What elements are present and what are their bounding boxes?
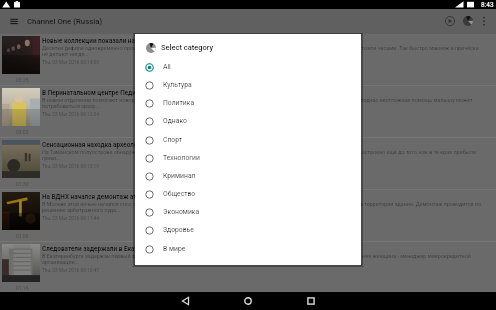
staticText: Следователи задержали в Екатеринбурге [42, 245, 169, 253]
staticText: Thu, 03 Mar 2016 06:10:47 [42, 268, 99, 274]
staticText: Select category [161, 43, 214, 52]
staticText: Thu, 03 Mar 2016 06:12:34 [42, 112, 99, 118]
staticText: 01:06 [16, 233, 29, 239]
button[interactable]: Statistics [463, 16, 473, 26]
staticText: Спорт [163, 136, 183, 144]
button[interactable]: Play [438, 9, 462, 33]
button[interactable]: 01:30 [0, 138, 496, 189]
staticText: На ВДНХ начался демонтаж аттракционов [42, 193, 173, 201]
staticText: All [163, 63, 171, 71]
staticText: В Перинатальном центре Педиатрического у… [42, 89, 216, 97]
button[interactable]: Home [238, 292, 258, 310]
button[interactable]: Back [176, 292, 196, 310]
button[interactable]: Спорт [135, 131, 361, 149]
button[interactable]: 03:25 [0, 34, 496, 85]
staticText: 8:43 [481, 1, 494, 9]
button[interactable]: Здоровье [135, 221, 361, 239]
button[interactable]: 03:05 [0, 86, 496, 137]
staticText: 01:16 [16, 285, 29, 291]
button[interactable]: Политика [135, 94, 361, 112]
staticText: Новые коллекции показали на Неделе моды [42, 37, 179, 45]
button[interactable]: 01:16 [0, 242, 496, 293]
button[interactable]: Однако [135, 112, 361, 130]
button[interactable]: All [135, 58, 361, 76]
staticText: Здоровье [163, 226, 194, 234]
staticText: 03:25 [16, 77, 29, 83]
staticText: Channel One (Russia) [27, 17, 103, 26]
button[interactable]: Криминал [135, 167, 361, 185]
staticText: Экономика [163, 208, 200, 216]
staticText: Thu, 03 Mar 2016 06:12:19 [42, 164, 99, 170]
staticText: Thu, 03 Mar 2016 06:11:44 [42, 216, 99, 222]
staticText: Политика [163, 99, 195, 107]
staticText: В Екатеринбурге задержан первый фигурант… [42, 253, 485, 265]
button[interactable]: Open navigation drawer [2, 11, 26, 35]
staticText: Однако [163, 117, 187, 125]
button[interactable]: Технологии [135, 149, 361, 167]
staticText: Общество [163, 190, 196, 198]
staticText: Thu, 03 Mar 2016 06:14:00 [42, 60, 99, 66]
staticText: В новом отделении помогают новорождённым… [42, 97, 485, 109]
button[interactable]: Культура [135, 76, 361, 94]
staticText: Десятки дефиле одновременно проходят сей… [42, 45, 485, 57]
button[interactable]: Общество [135, 185, 361, 203]
staticText: 01:30 [16, 181, 29, 187]
staticText: В Москве этой ночью начался снос незакон… [42, 201, 485, 213]
staticText: В мире [163, 245, 186, 253]
button[interactable]: Recent apps [301, 292, 321, 310]
staticText: Криминал [163, 172, 196, 180]
button[interactable]: В мире [135, 240, 361, 258]
staticText: Технологии [163, 154, 200, 162]
button[interactable]: More options [474, 9, 494, 29]
button[interactable]: Экономика [135, 203, 361, 221]
staticText: На Таманском полуострове обнаружен древн… [42, 149, 485, 161]
staticText: Сенсационная находка археологов [42, 141, 148, 149]
staticText: 03:05 [16, 129, 29, 135]
staticText: Культура [163, 81, 192, 89]
button[interactable]: 01:06 [0, 190, 496, 241]
